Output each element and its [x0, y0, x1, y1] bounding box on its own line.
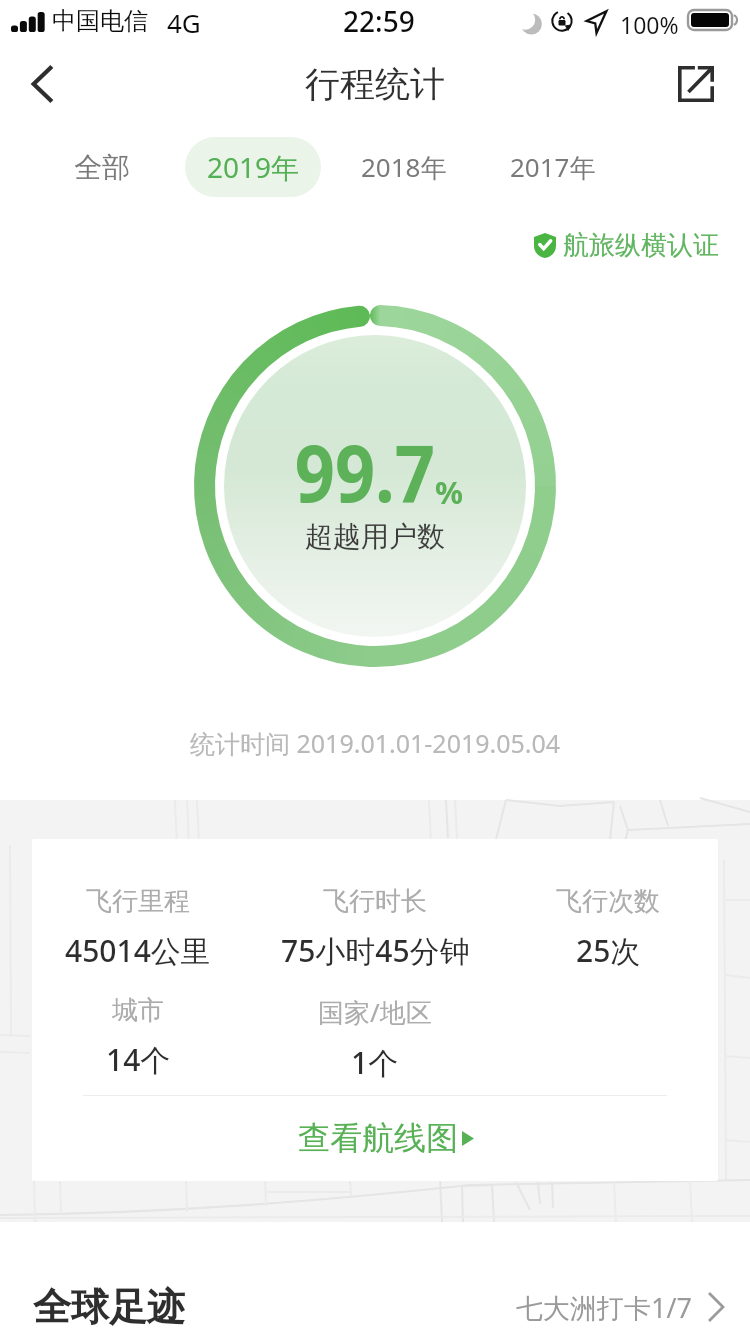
staticText: 2019年: [207, 148, 300, 186]
staticText: 75小时45分钟: [281, 930, 470, 971]
staticText: 全部: [74, 150, 130, 185]
staticText: 2018年: [361, 149, 447, 185]
staticText: 国家/地区: [318, 994, 432, 1030]
staticText: 城市: [112, 994, 164, 1027]
staticText: 100%: [620, 9, 679, 40]
staticText: 25次: [576, 930, 641, 971]
staticText: 45014公里: [65, 930, 211, 971]
staticText: 飞行次数: [556, 885, 660, 918]
staticText: 22:59: [343, 2, 415, 40]
staticText: 行程统计: [305, 62, 445, 106]
button[interactable]: 2017年: [494, 137, 612, 197]
staticText: 99.7: [295, 419, 435, 525]
button[interactable]: 2018年: [345, 137, 463, 197]
staticText: %: [435, 471, 463, 513]
staticText: 中国电信: [52, 6, 148, 36]
button[interactable]: 查看航线图: [43, 1114, 718, 1162]
staticText: 全球足迹: [33, 1283, 185, 1331]
staticText: 超越用户数: [305, 519, 445, 554]
staticText: 飞行时长: [323, 885, 427, 918]
button[interactable]: Back: [12, 54, 72, 114]
staticText: 查看航线图: [298, 1118, 458, 1158]
staticText: 14个: [106, 1039, 171, 1080]
button[interactable]: Share: [666, 54, 726, 114]
staticText: 1个: [351, 1042, 399, 1083]
staticText: 4G: [167, 5, 201, 40]
button[interactable]: 全球足迹: [0, 1265, 750, 1334]
button[interactable]: 2019年: [185, 137, 321, 197]
staticText: 统计时间 2019.01.01-2019.05.04: [190, 726, 561, 760]
staticText: 七大洲打卡1/7: [516, 1289, 692, 1326]
staticText: 飞行里程: [86, 885, 190, 918]
staticText: 2017年: [510, 149, 596, 185]
button[interactable]: 全部: [58, 137, 146, 197]
staticText: 航旅纵横认证: [563, 229, 719, 262]
